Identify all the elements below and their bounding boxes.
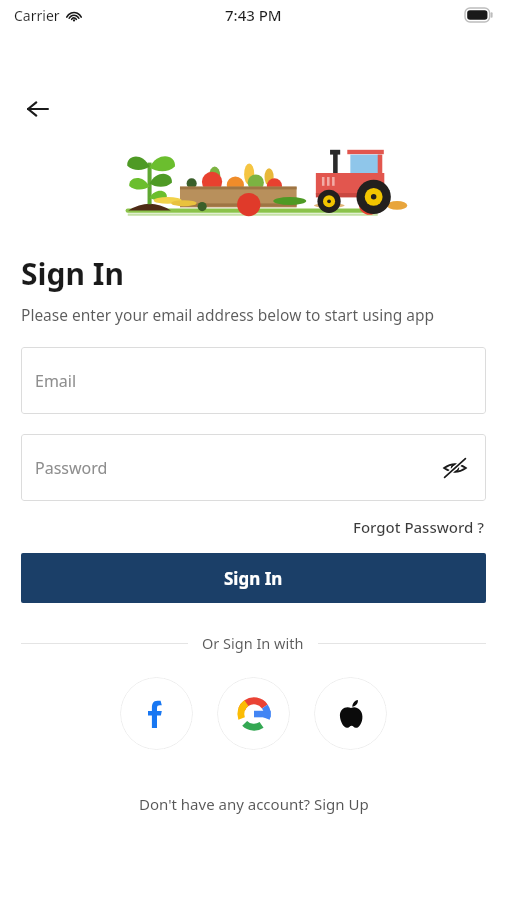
staticText: Carrier <box>14 6 60 25</box>
button[interactable]: Sign in with Google <box>217 677 290 750</box>
staticText: Password <box>35 457 108 479</box>
button[interactable]: Password <box>21 434 486 501</box>
staticText: Don't have any account? Sign Up <box>139 794 369 814</box>
button[interactable]: Sign In <box>21 553 486 603</box>
button[interactable]: Sign in with Apple <box>314 677 387 750</box>
button[interactable]: Back <box>16 87 60 131</box>
button[interactable]: Show password <box>438 451 472 485</box>
staticText: Email <box>35 370 77 392</box>
staticText: Please enter your email address below to… <box>21 304 435 325</box>
staticText: Sign In <box>21 253 124 294</box>
staticText: Sign In <box>224 567 283 590</box>
button[interactable]: Forgot Password ? <box>351 515 486 539</box>
staticText: 7:43 PM <box>225 5 282 25</box>
staticText: Or Sign In with <box>202 633 304 653</box>
button[interactable]: Don't have any account? Sign Up <box>135 790 373 818</box>
button[interactable]: Sign in with Facebook <box>120 677 193 750</box>
button[interactable]: Email <box>21 347 486 414</box>
staticText: Forgot Password ? <box>353 517 484 537</box>
